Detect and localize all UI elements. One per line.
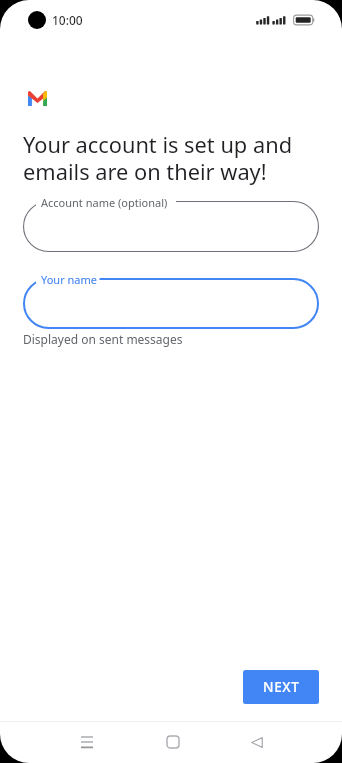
button[interactable]: NEXT [243,670,319,704]
staticText: NEXT [263,677,300,696]
button[interactable]: Your name [23,278,319,329]
button[interactable]: Recent apps [68,726,105,758]
button[interactable]: Back [238,726,275,758]
button[interactable]: Account name (optional) [23,201,319,252]
button[interactable]: Home [154,726,191,758]
staticText: Your account is set up and emails are on… [23,130,333,187]
staticText: 10:00 [52,12,83,28]
staticText: Displayed on sent messages [23,331,183,347]
staticText: Your name [41,272,97,287]
staticText: Account name (optional) [41,195,168,210]
